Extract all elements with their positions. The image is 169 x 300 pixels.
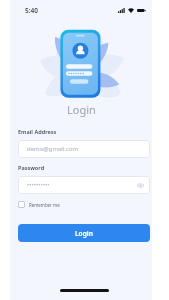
staticText: Email Address <box>18 128 57 136</box>
staticText: Login <box>67 102 96 117</box>
button[interactable]: demo@gmail.com <box>18 140 150 158</box>
button[interactable]: Login <box>18 224 150 242</box>
staticText: demo@gmail.com <box>27 145 79 153</box>
staticText: 5:40 <box>25 6 38 15</box>
staticText: •••••••••• <box>27 181 50 189</box>
staticText: Remember me <box>29 202 60 208</box>
staticText: Login <box>75 229 93 238</box>
button[interactable]: •••••••••• <box>18 176 150 194</box>
button[interactable]: Show password <box>137 182 144 189</box>
button[interactable]: Remember me <box>18 201 60 208</box>
staticText: Password <box>18 164 45 172</box>
